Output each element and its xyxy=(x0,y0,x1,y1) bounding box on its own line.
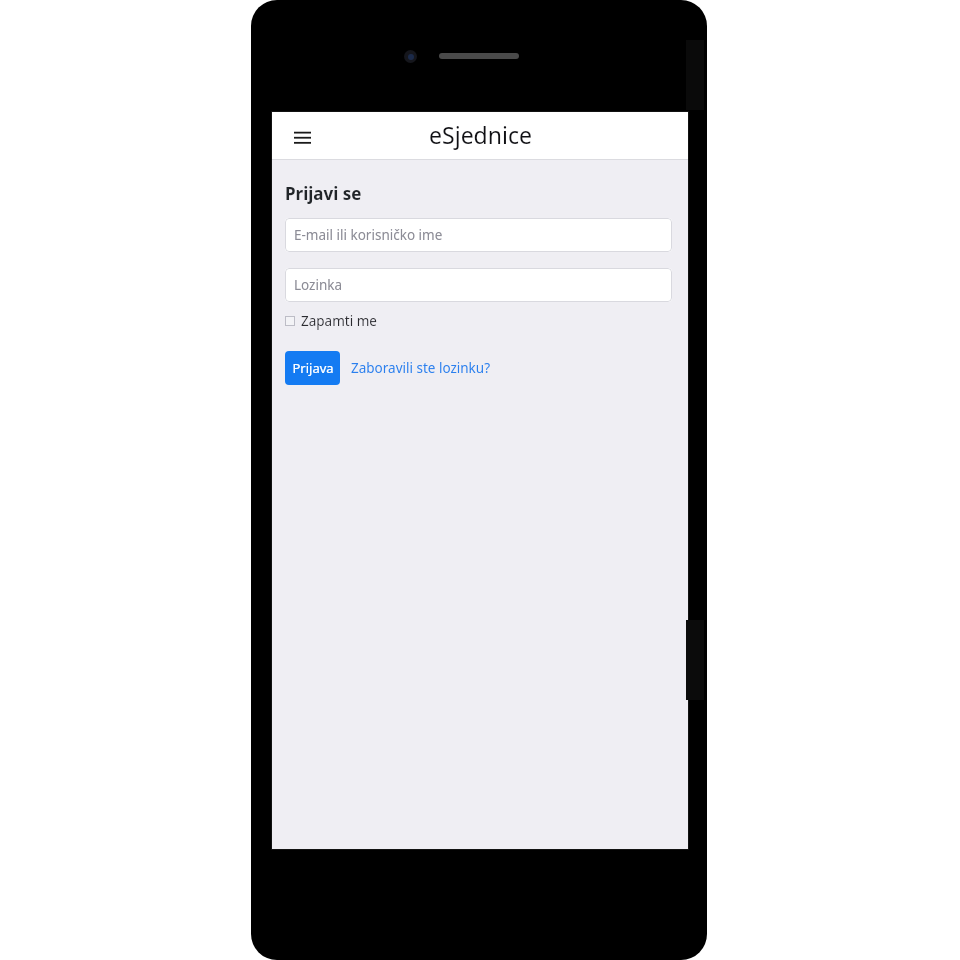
staticText: eSjednice xyxy=(429,119,532,150)
button[interactable]: Zapamti me xyxy=(285,312,377,330)
button[interactable]: Lozinka xyxy=(285,268,672,302)
button[interactable]: Prijava xyxy=(285,351,340,385)
button[interactable]: Open navigation menu xyxy=(285,119,319,153)
staticText: Prijavi se xyxy=(285,182,362,205)
staticText: Lozinka xyxy=(294,276,343,294)
button[interactable]: Zaboravili ste lozinku? xyxy=(351,359,491,377)
staticText: E-mail ili korisničko ime xyxy=(294,226,443,244)
button[interactable]: E-mail ili korisničko ime xyxy=(285,218,672,252)
staticText: Zapamti me xyxy=(301,312,377,330)
staticText: Prijava xyxy=(292,359,334,377)
staticText: Zaboravili ste lozinku? xyxy=(351,359,491,377)
